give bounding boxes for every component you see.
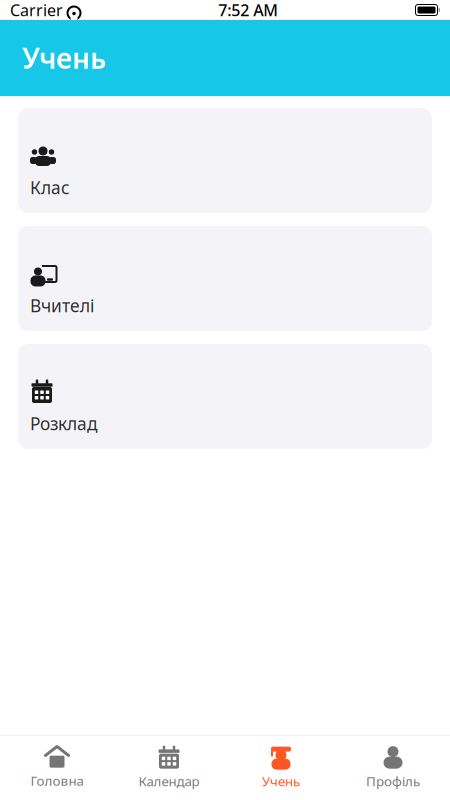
staticText: Carrier (10, 0, 63, 21)
button[interactable]: Клас (18, 108, 432, 213)
button[interactable]: Розклад (18, 344, 432, 449)
staticText: Учень (262, 772, 300, 790)
button[interactable]: Профіль (337, 737, 449, 799)
staticText: Розклад (30, 412, 98, 435)
staticText: Профіль (366, 772, 420, 790)
staticText: Вчителі (30, 294, 94, 317)
staticText: Учень (22, 39, 106, 77)
button[interactable]: Учень (225, 737, 337, 799)
button[interactable]: Вчителі (18, 226, 432, 331)
button[interactable]: Головна (1, 737, 113, 799)
staticText: Клас (30, 176, 70, 199)
button[interactable]: Календар (113, 737, 225, 799)
staticText: Головна (30, 772, 83, 789)
staticText: Календар (138, 772, 199, 790)
staticText: 7:52 AM (218, 0, 278, 21)
